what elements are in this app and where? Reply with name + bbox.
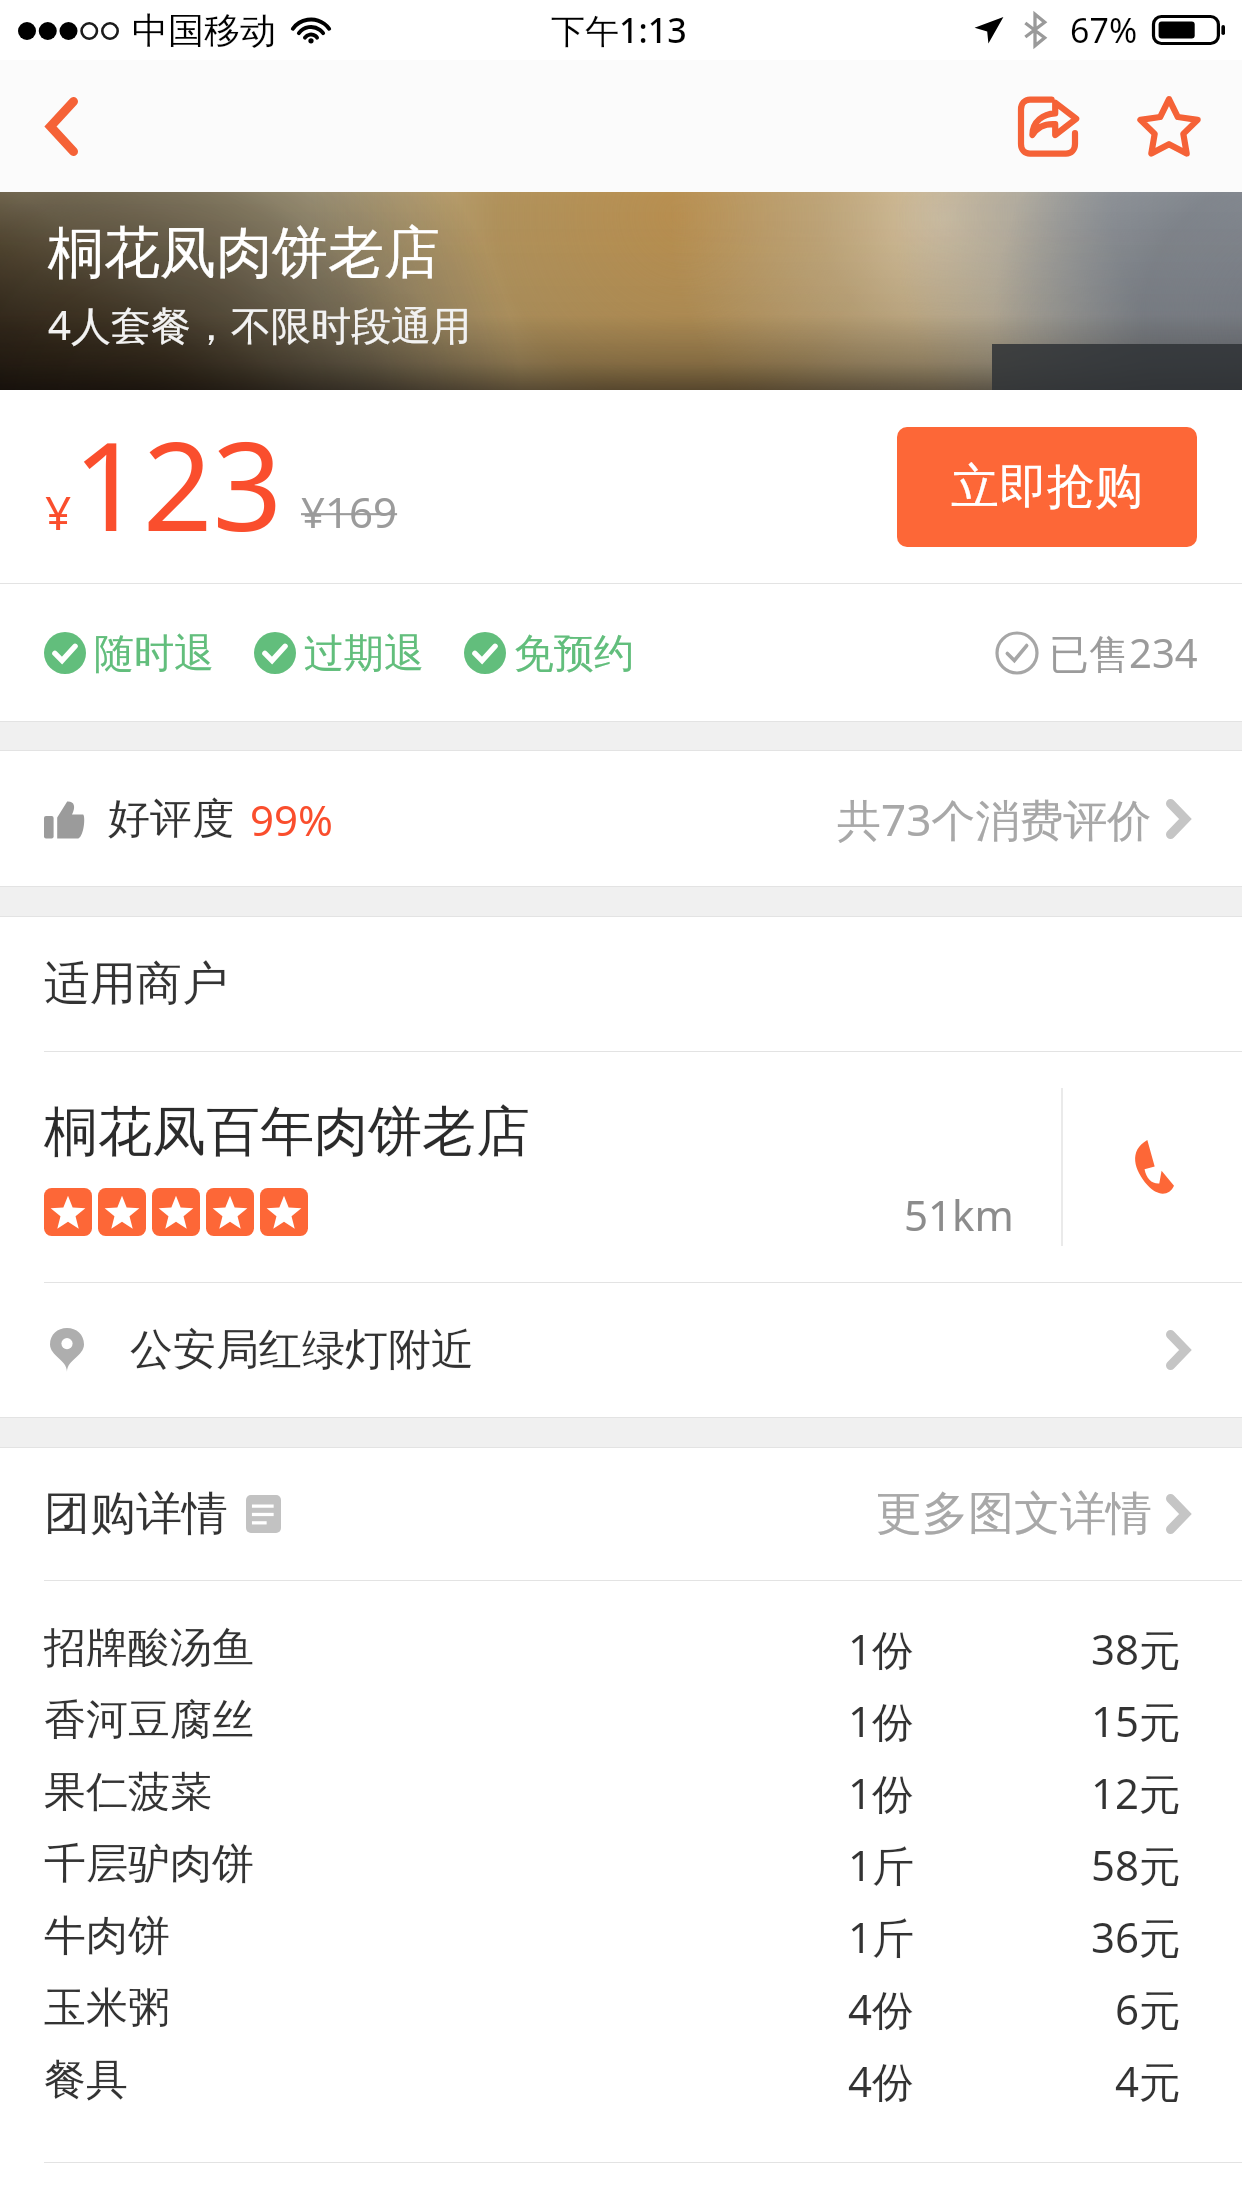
button[interactable]: 好评度 (0, 752, 1242, 886)
staticText: 1斤 (848, 1836, 915, 1893)
staticText: 4份 (848, 2052, 915, 2109)
staticText: 1份 (848, 1692, 915, 1749)
staticText: 过期退 (304, 628, 424, 678)
staticText: 67% (1070, 7, 1138, 53)
staticText: 千层驴肉饼 (44, 1838, 254, 1891)
button[interactable]: Share (988, 60, 1108, 192)
staticText: 4人套餐，不限时段通用 (48, 297, 471, 352)
button[interactable]: 更多图文详情 (876, 1485, 1190, 1543)
staticText: 团购详情 (44, 1485, 228, 1543)
staticText: 下午1:13 (551, 7, 687, 53)
staticText: 更多图文详情 (876, 1485, 1152, 1543)
staticText: 玉米粥 (44, 1982, 170, 2035)
staticText: 99% (250, 791, 333, 848)
staticText: 123 (73, 401, 283, 567)
staticText: 15元 (1091, 1692, 1182, 1749)
staticText: 1份 (848, 1620, 915, 1677)
staticText: 6元 (1115, 1980, 1182, 2037)
staticText: 桐花凤肉饼老店 (48, 218, 440, 289)
button[interactable] (0, 1051, 1060, 1282)
staticText: 51km (904, 1186, 1014, 1243)
staticText: 随时退 (94, 628, 214, 678)
staticText: ¥169 (301, 483, 398, 540)
staticText: 好评度 (108, 793, 234, 846)
staticText: 1份 (848, 1764, 915, 1821)
staticText: 牛肉饼 (44, 1910, 170, 1963)
staticText: 招牌酸汤鱼 (44, 1622, 254, 1675)
staticText: 4元 (1115, 2052, 1182, 2109)
staticText: 12元 (1091, 1764, 1182, 1821)
staticText: 1斤 (848, 1908, 915, 1965)
staticText: 桐花凤百年肉饼老店 (44, 1098, 530, 1166)
staticText: 中国移动 (132, 8, 276, 53)
button[interactable]: Favorite (1110, 60, 1228, 192)
staticText: 58元 (1091, 1836, 1182, 1893)
button[interactable]: 公安局红绿灯附近 (0, 1282, 1242, 1417)
staticText: 香河豆腐丝 (44, 1694, 254, 1747)
button[interactable]: 立即抢购 (897, 427, 1197, 547)
button[interactable]: Call (1060, 1067, 1242, 1267)
staticText: 4份 (848, 1980, 915, 2037)
staticText: 立即抢购 (951, 457, 1143, 517)
staticText: 适用商户 (44, 955, 228, 1013)
staticText: ¥ (45, 481, 72, 544)
staticText: 果仁菠菜 (44, 1766, 212, 1819)
button[interactable]: Back (0, 60, 124, 192)
staticText: 36元 (1091, 1908, 1182, 1965)
staticText: 公安局红绿灯附近 (130, 1323, 474, 1377)
staticText: 免预约 (514, 628, 634, 678)
staticText: 餐具 (44, 2054, 128, 2107)
staticText: 共73个消费评价 (837, 789, 1152, 849)
staticText: 38元 (1091, 1620, 1182, 1677)
staticText: 已售234 (1049, 625, 1198, 680)
